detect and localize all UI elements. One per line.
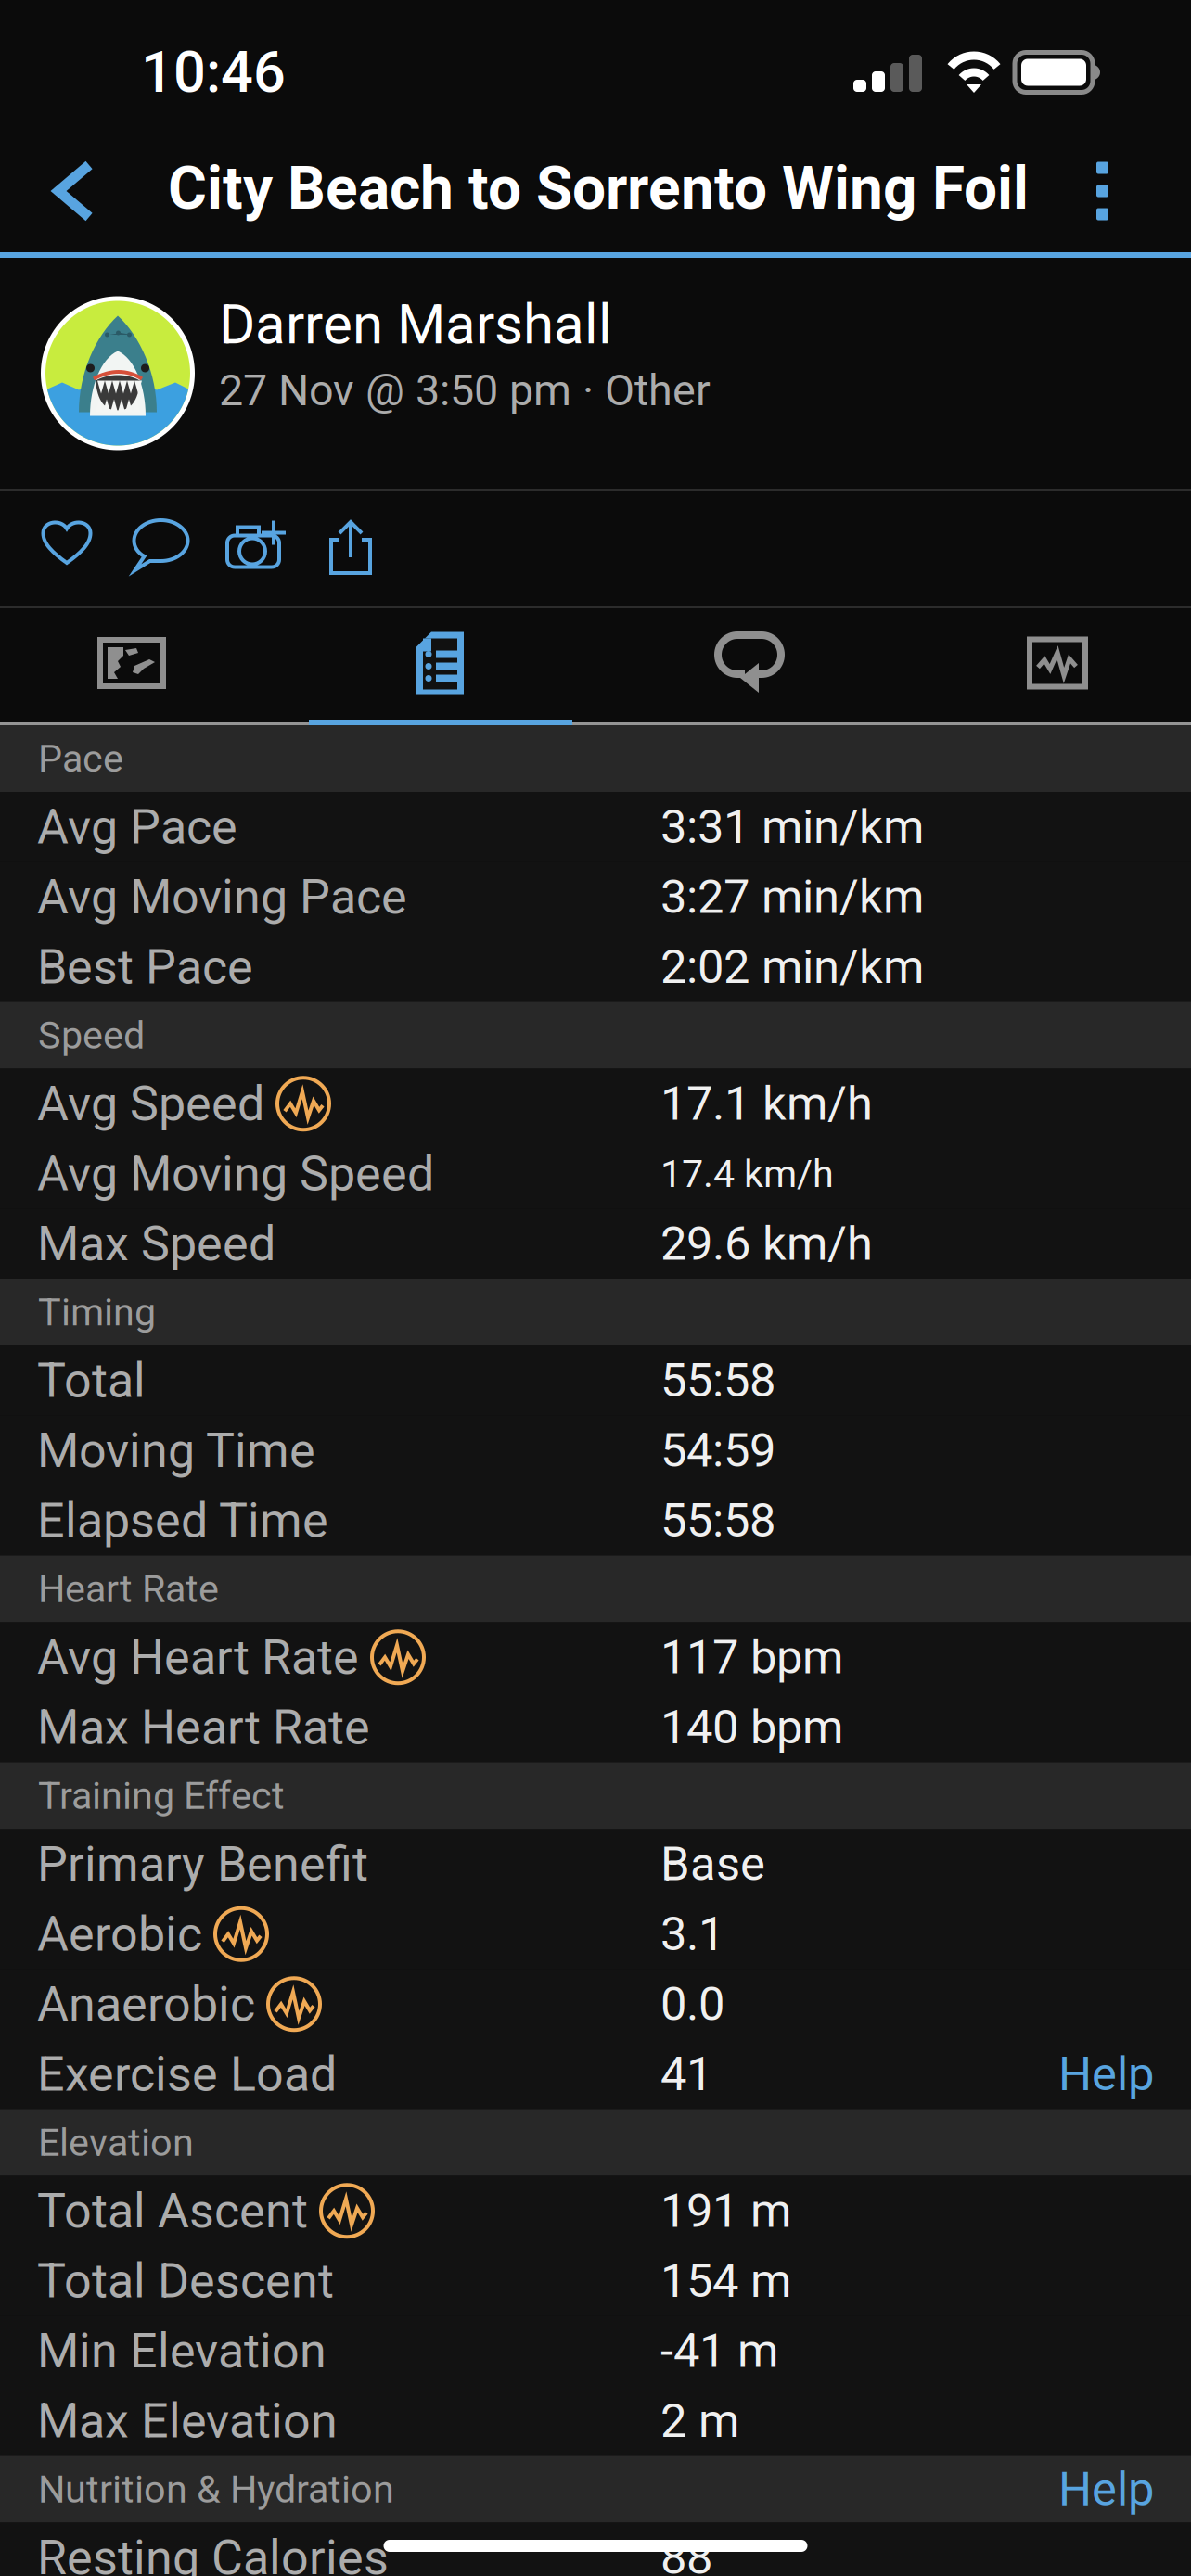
staticText: Anaerobic	[37, 1976, 255, 2032]
button[interactable]: Elapsed Time	[0, 1486, 1191, 1556]
button[interactable]: Like	[19, 491, 114, 606]
staticText: Avg Moving Pace	[37, 869, 407, 925]
staticText: Heart Rate	[38, 1566, 219, 1611]
staticText: 2:02 min/km	[660, 939, 924, 995]
staticText: 27 Nov @ 3:50 pm · Other	[219, 365, 711, 416]
staticText: Darren Marshall	[219, 292, 612, 357]
staticText: Speed	[38, 1013, 145, 1058]
staticText: Max Speed	[37, 1215, 275, 1272]
staticText: 154 m	[660, 2253, 791, 2308]
staticText: 140 bpm	[660, 1700, 843, 1755]
button[interactable]: Laps	[595, 608, 893, 718]
staticText: 0.0	[660, 1977, 724, 2032]
staticText: 29.6 km/h	[660, 1216, 873, 1271]
button[interactable]: Details	[286, 608, 595, 718]
staticText: Help	[1058, 2047, 1154, 2102]
staticText: Training Effect	[38, 1773, 285, 1818]
button[interactable]: Aerobic	[0, 1899, 1191, 1969]
staticText: 10:46	[141, 39, 286, 106]
staticText: City Beach to Sorrento Wing Foil	[168, 153, 1029, 223]
staticText: 191 m	[660, 2183, 791, 2238]
staticText: 117 bpm	[660, 1630, 843, 1685]
staticText: 54:59	[660, 1423, 775, 1478]
button[interactable]: Total Descent	[0, 2246, 1191, 2316]
staticText: Max Heart Rate	[37, 1699, 370, 1756]
staticText: 3.1	[660, 1907, 724, 1962]
staticText: Moving Time	[37, 1422, 315, 1479]
staticText: 2 m	[660, 2393, 739, 2448]
button[interactable]: Best Pace	[0, 932, 1191, 1002]
button[interactable]: Exercise Load	[0, 2039, 1191, 2109]
button[interactable]: More options	[1044, 121, 1191, 252]
button[interactable]: Moving Time	[0, 1416, 1191, 1486]
staticText: Avg Moving Speed	[37, 1145, 434, 1202]
staticText: Pace	[38, 736, 123, 781]
button[interactable]: Avg Moving Pace	[0, 862, 1191, 932]
button[interactable]: Anaerobic	[0, 1969, 1191, 2039]
staticText: Exercise Load	[37, 2046, 337, 2102]
staticText: Avg Speed	[37, 1075, 264, 1132]
staticText: Total	[37, 1352, 146, 1409]
button[interactable]: Darren Marshall	[0, 258, 1191, 489]
button[interactable]: Resting Calories	[0, 2523, 1191, 2576]
button[interactable]: Max Speed	[0, 1209, 1191, 1279]
staticText: Avg Heart Rate	[37, 1629, 359, 1686]
button[interactable]: Add photo	[209, 491, 303, 606]
staticText: Avg Pace	[37, 799, 237, 855]
staticText: 55:58	[660, 1353, 775, 1408]
staticText: Elapsed Time	[37, 1492, 328, 1549]
button[interactable]: Help	[1058, 2462, 1154, 2517]
staticText: Total Descent	[37, 2253, 334, 2309]
staticText: Max Elevation	[37, 2393, 338, 2449]
button[interactable]: Comment	[114, 491, 209, 606]
staticText: Resting Calories	[37, 2529, 389, 2576]
staticText: 17.4 km/h	[660, 1151, 834, 1196]
button[interactable]: Back	[0, 121, 149, 252]
button[interactable]: Max Heart Rate	[0, 1692, 1191, 1762]
button[interactable]: Share	[303, 491, 398, 606]
staticText: Help	[1058, 2462, 1154, 2517]
staticText: Timing	[38, 1290, 156, 1335]
staticText: Min Elevation	[37, 2323, 327, 2379]
staticText: 3:27 min/km	[660, 869, 924, 925]
staticText: 55:58	[660, 1493, 775, 1548]
staticText: Elevation	[38, 2120, 194, 2165]
staticText: Base	[660, 1837, 765, 1892]
button[interactable]: Avg Pace	[0, 792, 1191, 862]
button[interactable]: Primary Benefit	[0, 1829, 1191, 1899]
button[interactable]: Charts	[893, 608, 1191, 718]
staticText: 88	[660, 2530, 712, 2576]
button[interactable]: Avg Speed	[0, 1069, 1191, 1139]
staticText: Primary Benefit	[37, 1836, 368, 1892]
staticText: Aerobic	[37, 1906, 202, 1962]
staticText: Nutrition & Hydration	[38, 2467, 394, 2512]
staticText: 3:31 min/km	[660, 799, 924, 854]
staticText: Best Pace	[37, 939, 253, 995]
button[interactable]: Map	[0, 608, 286, 718]
button[interactable]: Total	[0, 1345, 1191, 1416]
staticText: 17.1 km/h	[660, 1076, 873, 1131]
button[interactable]: Max Elevation	[0, 2386, 1191, 2456]
staticText: -41 m	[660, 2323, 778, 2378]
button[interactable]: Total Ascent	[0, 2176, 1191, 2246]
staticText: 41	[660, 2047, 712, 2102]
staticText: Total Ascent	[37, 2183, 308, 2239]
button[interactable]: Avg Moving Speed	[0, 1139, 1191, 1209]
button[interactable]: Avg Heart Rate	[0, 1622, 1191, 1692]
button[interactable]: Min Elevation	[0, 2316, 1191, 2386]
